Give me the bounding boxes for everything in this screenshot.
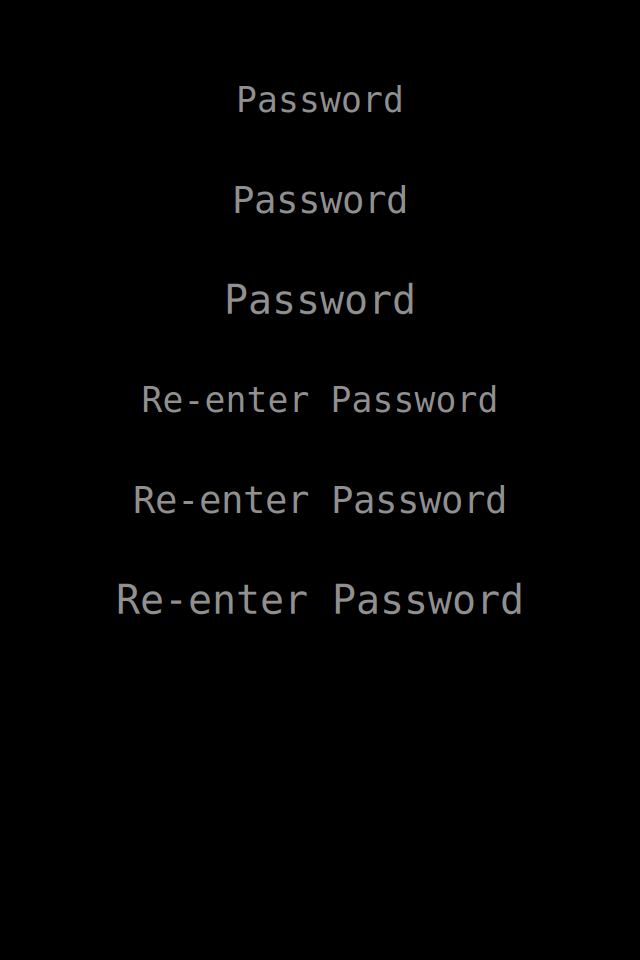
staticText: Re-enter Password [133,479,507,521]
staticText: Re-enter Password [141,380,498,420]
staticText: Re-enter Password [116,577,524,623]
staticText: Password [224,277,416,323]
staticText: Password [236,80,404,120]
staticText: Password [232,179,408,221]
